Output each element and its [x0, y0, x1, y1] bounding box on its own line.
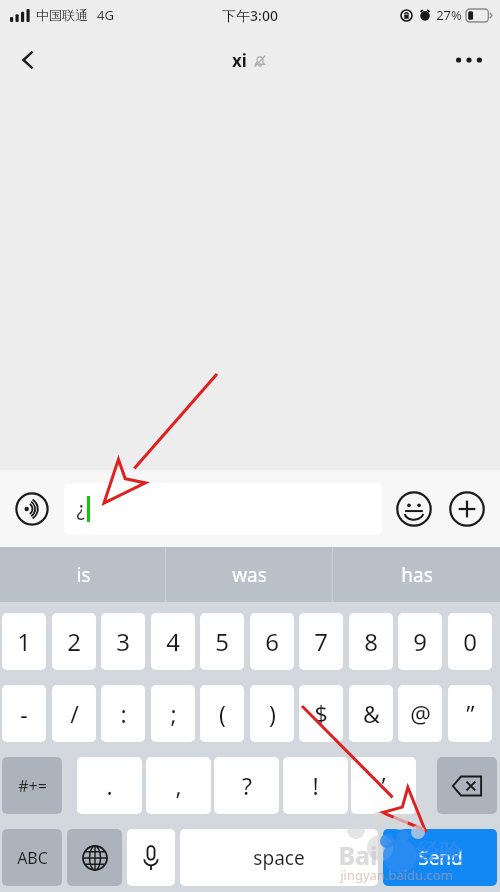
staticText: 中国联通 — [36, 7, 88, 23]
staticText: / — [70, 698, 79, 729]
button[interactable]: Switch keyboard language — [67, 829, 122, 886]
button[interactable]: - — [2, 685, 46, 742]
staticText: ¿ — [76, 496, 85, 522]
staticText: @ — [410, 698, 431, 729]
staticText: - — [20, 698, 28, 729]
staticText: ’ — [381, 770, 386, 801]
button[interactable]: . — [77, 757, 142, 814]
staticText: ) — [269, 698, 276, 729]
button[interactable]: ’ — [351, 757, 416, 814]
button[interactable]: 9 — [398, 613, 442, 670]
staticText: 1 — [17, 625, 31, 658]
button[interactable]: Voice message — [6, 483, 58, 535]
button[interactable]: ; — [151, 685, 195, 742]
button[interactable]: ) — [250, 685, 294, 742]
staticText: 27% — [436, 6, 462, 24]
button[interactable]: space — [180, 829, 378, 886]
staticText: 5 — [215, 625, 229, 658]
staticText: was — [232, 562, 267, 588]
button[interactable]: 0 — [448, 613, 492, 670]
staticText: 经验 — [416, 838, 462, 867]
button[interactable]: ( — [200, 685, 244, 742]
staticText: xi — [232, 49, 247, 72]
staticText: ” — [466, 698, 475, 729]
staticText: , — [175, 770, 182, 801]
staticText: 3 — [116, 625, 130, 658]
staticText: 2 — [67, 625, 81, 658]
button[interactable]: 6 — [250, 613, 294, 670]
staticText: 7 — [314, 625, 328, 658]
button[interactable]: ! — [283, 757, 348, 814]
staticText: ; — [170, 698, 177, 729]
button[interactable]: ¿ — [64, 483, 382, 535]
button[interactable]: #+= — [2, 757, 62, 814]
button[interactable]: 8 — [349, 613, 393, 670]
button[interactable]: , — [146, 757, 211, 814]
staticText: ( — [219, 698, 226, 729]
button[interactable]: was — [166, 547, 333, 602]
staticText: ABC — [17, 847, 48, 869]
button[interactable]: Send — [383, 829, 497, 886]
staticText: 8 — [364, 625, 378, 658]
button[interactable]: ? — [214, 757, 279, 814]
button[interactable]: Voice input — [127, 829, 175, 886]
button[interactable]: 7 — [299, 613, 343, 670]
button[interactable]: Emoji — [390, 485, 438, 533]
staticText: : — [120, 698, 127, 729]
staticText: 0 — [463, 625, 477, 658]
button[interactable]: Back — [4, 35, 54, 85]
button[interactable]: More options — [444, 35, 494, 85]
button[interactable]: More functions — [443, 485, 491, 533]
staticText: $ — [314, 698, 328, 729]
button[interactable]: 2 — [52, 613, 96, 670]
staticText: space — [253, 845, 305, 871]
staticText: Send — [418, 845, 463, 871]
staticText: 下午3:00 — [222, 6, 278, 25]
staticText: jingyan.baidu.com — [340, 866, 453, 884]
staticText: 6 — [265, 625, 279, 658]
button[interactable]: @ — [398, 685, 442, 742]
button[interactable]: & — [349, 685, 393, 742]
button[interactable]: $ — [299, 685, 343, 742]
button[interactable]: 1 — [2, 613, 46, 670]
staticText: Bai — [338, 838, 378, 872]
staticText: ! — [312, 770, 319, 801]
button[interactable]: : — [101, 685, 145, 742]
staticText: is — [76, 562, 91, 588]
button[interactable]: Backspace — [437, 757, 497, 814]
button[interactable]: 5 — [200, 613, 244, 670]
staticText: 9 — [413, 625, 427, 658]
button[interactable]: 3 — [101, 613, 145, 670]
staticText: #+= — [18, 775, 47, 797]
button[interactable]: ” — [448, 685, 492, 742]
button[interactable]: is — [0, 547, 166, 602]
staticText: 4G — [97, 6, 114, 24]
button[interactable]: has — [333, 547, 500, 602]
button[interactable]: ABC — [2, 829, 62, 886]
staticText: has — [401, 562, 433, 588]
staticText: . — [106, 770, 113, 801]
button[interactable]: / — [52, 685, 96, 742]
staticText: ? — [242, 770, 252, 801]
button[interactable]: 4 — [151, 613, 195, 670]
staticText: & — [363, 698, 380, 729]
staticText: 4 — [166, 625, 180, 658]
